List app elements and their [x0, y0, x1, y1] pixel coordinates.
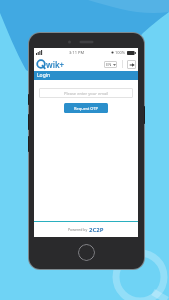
staticText: Login: [37, 72, 51, 79]
staticText: Please enter your email: [64, 91, 109, 96]
staticText: Request OTP: [74, 106, 98, 111]
staticText: 3:11 PM: [69, 50, 85, 55]
button[interactable]: Request OTP: [64, 103, 108, 113]
staticText: 2C2P: [89, 226, 104, 234]
staticText: 100%: [115, 50, 126, 55]
button[interactable]: Log out: [127, 60, 136, 69]
staticText: EN: [106, 62, 112, 67]
staticText: Powered by: [68, 227, 89, 232]
button[interactable]: EN: [104, 61, 117, 68]
button[interactable]: Home button: [78, 244, 95, 261]
button[interactable]: Please enter your email: [39, 88, 133, 98]
staticText: wik+: [46, 59, 65, 70]
